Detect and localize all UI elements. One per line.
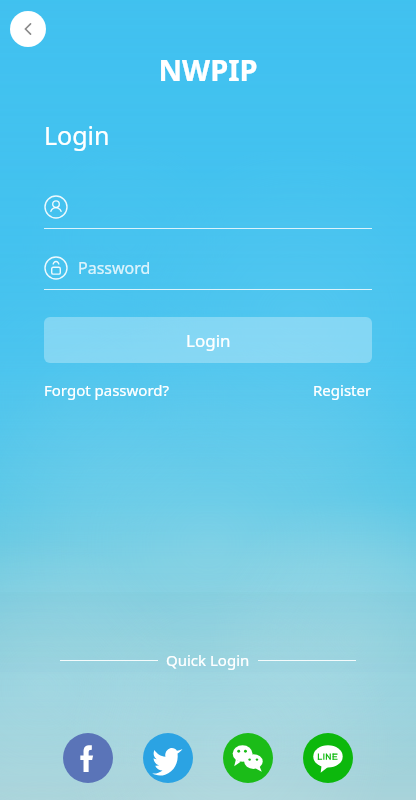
staticText: Register	[313, 380, 372, 400]
button[interactable]: Facebook	[63, 733, 113, 783]
button[interactable]: LINE	[303, 733, 353, 783]
staticText: Quick Login	[166, 650, 250, 670]
staticText: NWPIP	[0, 50, 416, 89]
button[interactable]	[44, 186, 372, 228]
button[interactable]: Forgot password?	[44, 380, 170, 400]
staticText: Login	[44, 118, 110, 152]
button[interactable]: Login	[44, 317, 372, 363]
staticText: Login	[186, 329, 231, 352]
button[interactable]: Password	[44, 247, 372, 289]
button[interactable]: Twitter	[143, 733, 193, 783]
staticText: Password	[78, 257, 151, 279]
button[interactable]: Back	[10, 11, 46, 47]
button[interactable]: WeChat	[223, 733, 273, 783]
button[interactable]: Register	[313, 380, 372, 400]
staticText: Forgot password?	[44, 380, 170, 400]
